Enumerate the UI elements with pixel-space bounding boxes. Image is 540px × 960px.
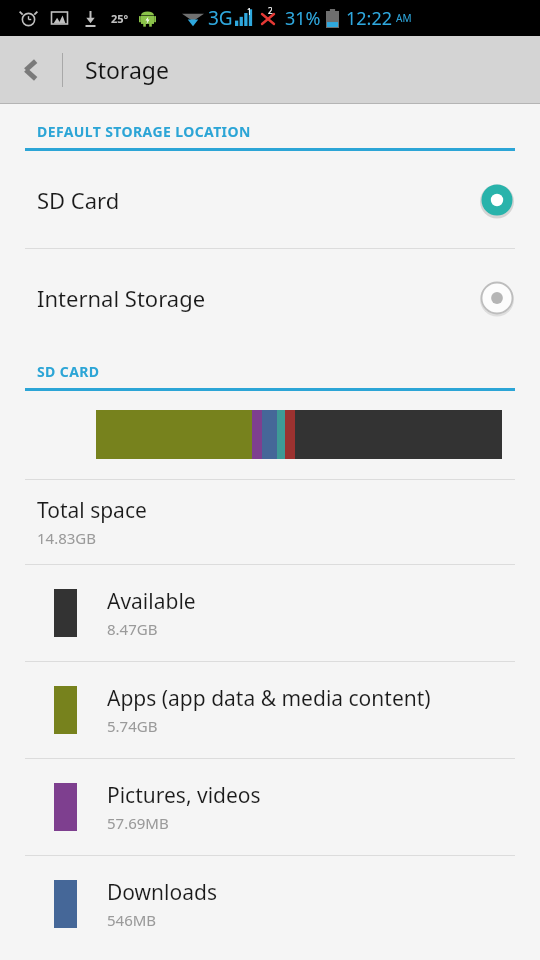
button[interactable]: Apps (app data & media content): [0, 662, 540, 758]
staticText: 5.74GB: [107, 716, 158, 736]
button[interactable]: Available: [0, 565, 540, 661]
staticText: 546MB: [107, 910, 157, 930]
button[interactable]: SD Card: [0, 151, 540, 248]
button[interactable]: Downloads: [0, 856, 540, 952]
staticText: DEFAULT STORAGE LOCATION: [37, 122, 251, 141]
staticText: 14.83GB: [37, 528, 97, 548]
staticText: Apps (app data & media content): [107, 684, 431, 713]
button[interactable]: Total space: [0, 480, 540, 564]
staticText: SD Card: [37, 185, 480, 215]
button[interactable]: Back: [0, 36, 62, 103]
staticText: 2: [268, 5, 273, 16]
button[interactable]: Internal Storage: [0, 249, 540, 346]
staticText: Internal Storage: [37, 283, 480, 313]
button[interactable]: Pictures, videos: [0, 759, 540, 855]
staticText: Available: [107, 587, 196, 616]
staticText: SD CARD: [37, 362, 100, 381]
staticText: 57.69MB: [107, 813, 169, 833]
staticText: Downloads: [107, 878, 217, 907]
staticText: Storage: [85, 54, 169, 85]
staticText: 31%: [285, 6, 321, 31]
staticText: 12:22: [346, 6, 393, 31]
staticText: 1: [247, 6, 252, 17]
staticText: Total space: [37, 496, 147, 525]
staticText: 3G: [208, 5, 233, 31]
staticText: Pictures, videos: [107, 781, 261, 810]
staticText: 25°: [111, 11, 129, 26]
staticText: 8.47GB: [107, 619, 158, 639]
staticText: AM: [396, 11, 412, 25]
